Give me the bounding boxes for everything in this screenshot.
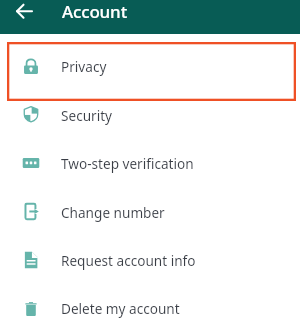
button[interactable]: Request account info <box>0 236 300 285</box>
staticText: Request account info <box>61 251 196 270</box>
button[interactable]: Two-step verification <box>0 139 300 188</box>
staticText: Change number <box>61 203 165 222</box>
button[interactable]: Delete my account <box>0 284 300 333</box>
staticText: Two-step verification <box>61 154 194 173</box>
button[interactable]: Back <box>11 0 37 26</box>
button[interactable]: Change number <box>0 188 300 237</box>
staticText: Privacy <box>61 57 107 76</box>
staticText: Delete my account <box>61 299 180 318</box>
staticText: Account <box>62 0 127 23</box>
staticText: Security <box>61 106 113 125</box>
button[interactable]: Privacy <box>0 42 300 91</box>
button[interactable]: Security <box>0 91 300 140</box>
